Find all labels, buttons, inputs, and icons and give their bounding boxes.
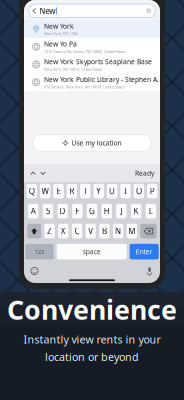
button[interactable]: New York Public Library - Stephen A. Sch… [24,73,160,91]
button[interactable]: Next field [38,167,48,180]
staticText: X [61,226,66,236]
staticText: Enter [136,247,153,256]
button[interactable]: 123 [25,244,54,259]
staticText: Q [29,186,35,196]
staticText: A [31,206,36,216]
button[interactable]: Dictate [144,266,155,276]
staticText: I [124,186,127,196]
button[interactable]: Delete [140,224,157,238]
staticText: T [83,186,87,196]
staticText: W [42,186,49,196]
button[interactable]: Previous field [28,167,38,180]
staticText: New York, NY, USA [44,31,78,36]
staticText: New York [44,22,74,30]
staticText: Convenience [7,292,177,327]
staticText: P [150,186,155,196]
button[interactable]: New York Skyports Seaplane Base [24,56,160,73]
staticText: 476 5th Ave, New York, NY 10018, United … [44,84,125,90]
staticText: G [89,206,95,216]
button[interactable]: space [57,244,127,259]
button[interactable]: Shift [27,224,41,238]
staticText: S [46,206,50,216]
staticText: 1315 Tatamy Rd, Easton, PA 19045, United… [44,49,126,54]
button[interactable]: Use my location [32,134,151,151]
staticText: F [75,206,79,216]
button[interactable]: New Yo Pa [24,38,160,56]
staticText: Ready [135,169,154,178]
staticText: B [102,226,107,236]
staticText: 123 [35,248,44,255]
staticText: Use my location [72,139,122,147]
staticText: J [120,206,122,216]
button[interactable]: Enter [130,244,159,259]
button[interactable]: New [28,4,155,18]
staticText: Instantly view rents in your [23,332,160,346]
staticText: R [69,186,74,196]
staticText: C [74,226,79,236]
staticText: New [39,5,55,16]
staticText: E [56,186,60,196]
staticText: New Yo Pa [44,39,77,48]
staticText: O [136,186,142,196]
button[interactable]: New York [24,20,160,38]
staticText: K [134,206,139,216]
staticText: New York Public Library - Stephen A. Sch… [44,75,178,84]
button[interactable]: Ready [133,167,156,180]
staticText: L [149,206,153,216]
staticText: New York Skyports Seaplane Base [44,57,152,66]
button[interactable]: Emoji [29,266,40,276]
staticText: U [109,186,115,196]
staticText: location or beyond [45,350,139,364]
staticText: H [104,206,110,216]
staticText: M [128,226,135,236]
staticText: N [115,226,121,236]
staticText: New York, NY 10012, United States [44,66,103,72]
staticText: D [60,206,66,216]
staticText: V [88,226,93,236]
staticText: space [83,247,101,256]
staticText: Z [47,226,52,236]
staticText: Y [96,186,101,196]
